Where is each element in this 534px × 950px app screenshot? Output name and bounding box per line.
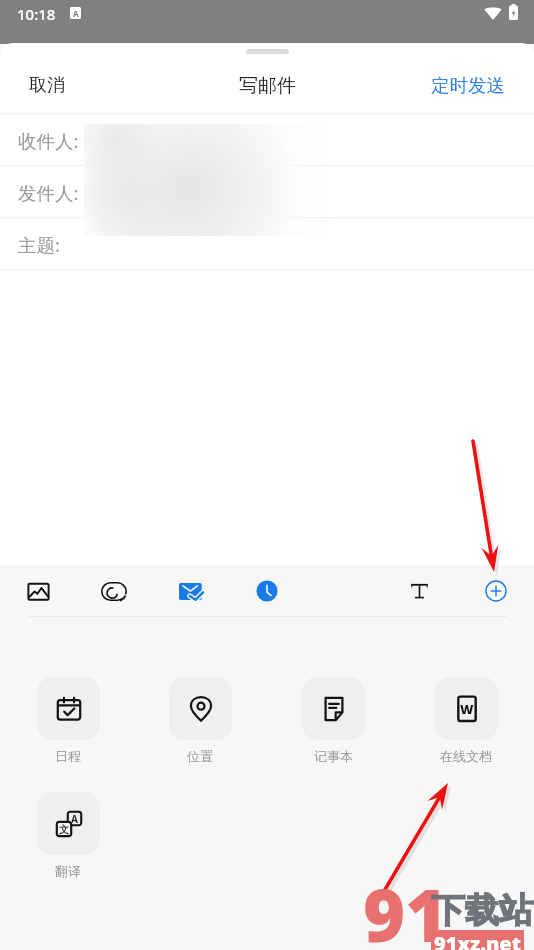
staticText: 下载站 [431,889,533,932]
button[interactable]: Read receipt [170,569,214,613]
button[interactable]: 主题: [0,218,534,269]
button[interactable]: Schedule send [245,569,289,613]
staticText: 主题: [18,232,60,257]
button[interactable]: 发件人: [0,166,534,217]
button[interactable]: Location [169,677,232,740]
button[interactable]: Text format [397,569,441,613]
button[interactable]: Translate [37,792,100,855]
button[interactable]: 定时发送 [409,60,534,111]
staticText: 91 [363,865,448,950]
staticText: 写邮件 [239,74,296,98]
staticText: 取消 [29,74,65,97]
staticText: 10:18 [17,4,56,24]
button[interactable]: Notes [302,677,365,740]
staticText: A [71,812,78,826]
button[interactable]: More options [474,569,518,613]
button[interactable]: Insert image [16,569,60,613]
staticText: 记事本 [314,748,353,764]
button[interactable]: 取消 [0,60,87,111]
button[interactable]: Insert link [92,569,136,613]
staticText: 91xz.net [434,930,521,950]
button[interactable]: Calendar [37,677,100,740]
staticText: 日程 [55,748,81,764]
staticText: 定时发送 [431,74,505,97]
staticText: 收件人: [18,128,79,153]
staticText: A [73,8,79,19]
staticText: W [460,700,474,718]
staticText: 发件人: [18,180,79,205]
staticText: 在线文档 [440,748,492,764]
staticText: 翻译 [55,863,81,879]
staticText: 位置 [187,748,213,764]
staticText: 文 [59,823,69,836]
button[interactable]: 收件人: [0,114,534,165]
button[interactable]: Online document [435,677,498,740]
